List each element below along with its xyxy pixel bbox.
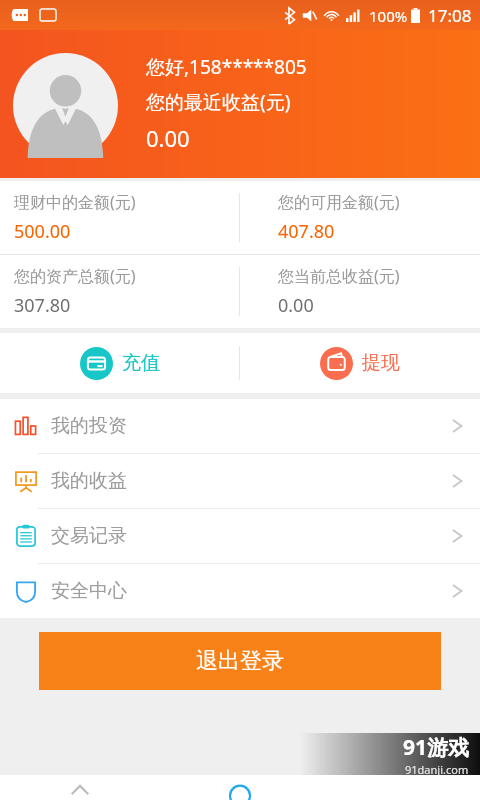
staticText: 307.80 [14,293,71,318]
staticText: 您的资产总额(元) [14,265,136,287]
staticText: 407.80 [278,219,335,244]
staticText: 您当前总收益(元) [278,265,400,287]
staticText: 我的收益 [51,469,127,493]
staticText: 500.00 [14,219,71,244]
staticText: 交易记录 [51,524,127,548]
button[interactable]: 交易记录 [0,509,480,564]
staticText: 91游戏 [403,733,470,762]
button[interactable]: 提现 [240,333,480,393]
staticText: 安全中心 [51,579,127,603]
staticText: 您的最近收益(元) [146,89,291,115]
staticText: 0.00 [278,293,314,318]
staticText: 提现 [362,351,400,375]
button[interactable]: 我的投资 [0,399,480,454]
staticText: 我的投资 [51,414,127,438]
button[interactable]: Back [0,775,160,800]
staticText: 理财中的金额(元) [14,191,136,213]
staticText: 91danji.com [405,762,469,775]
staticText: 0.00 [146,123,190,153]
staticText: 17:08 [428,4,472,27]
button[interactable]: Home [160,775,320,800]
staticText: 您好,158*****805 [146,54,307,80]
staticText: 充值 [122,351,160,375]
button[interactable]: 退出登录 [39,632,441,690]
staticText: 退出登录 [196,647,284,675]
staticText: 100% [369,6,408,26]
button[interactable]: 充值 [0,333,239,393]
button[interactable]: 我的收益 [0,454,480,509]
staticText: 您的可用金额(元) [278,191,400,213]
button[interactable]: 安全中心 [0,564,480,618]
